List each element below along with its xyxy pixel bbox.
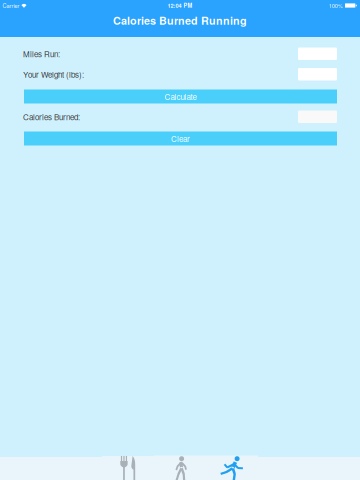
staticText: Calculate xyxy=(164,91,196,102)
staticText: Clear xyxy=(171,133,190,144)
button[interactable]: Calculate xyxy=(24,89,337,103)
staticText: Calories Burned: xyxy=(23,111,80,122)
button[interactable]: Clear xyxy=(24,131,337,145)
staticText: 100% xyxy=(329,1,343,9)
staticText: Carrier xyxy=(2,1,19,9)
staticText: 12:04 PM xyxy=(167,1,192,9)
button[interactable]: Running xyxy=(206,457,258,480)
staticText: Your Weight (lbs): xyxy=(23,68,84,80)
staticText: Miles Run: xyxy=(23,48,60,59)
button[interactable]: Food xyxy=(102,457,154,480)
button[interactable]: Walking xyxy=(154,457,206,480)
staticText: Calories Burned Running xyxy=(113,12,247,28)
